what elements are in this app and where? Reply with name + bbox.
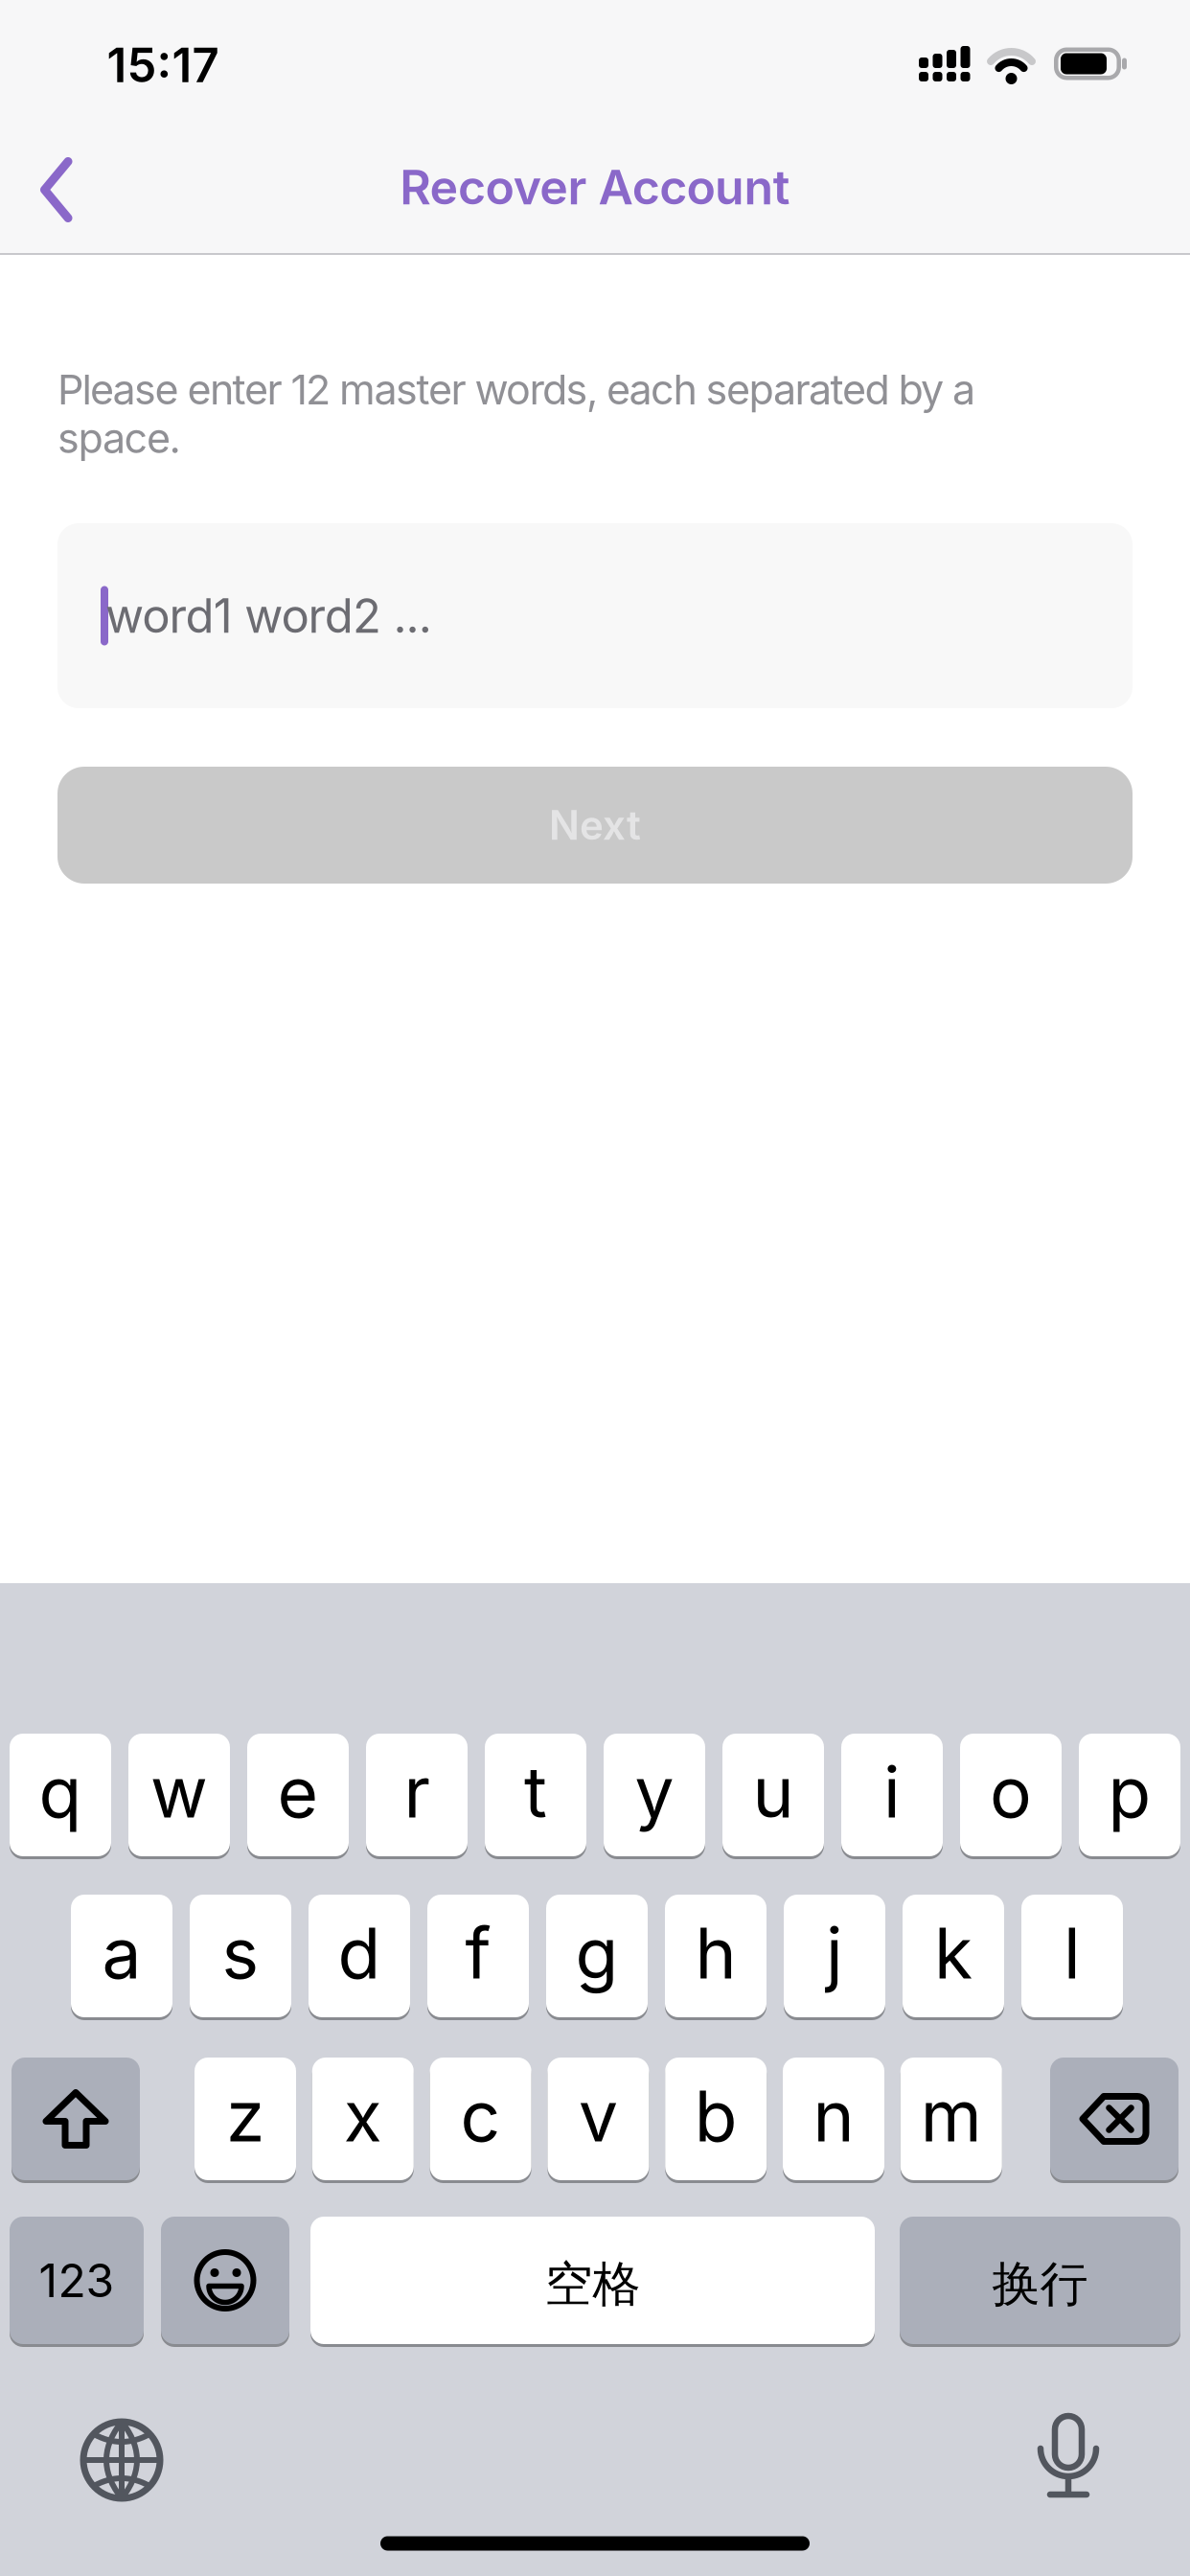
button[interactable]: s (190, 1893, 291, 2019)
button[interactable]: g (546, 1893, 648, 2019)
staticText: p (1108, 1751, 1151, 1833)
button[interactable]: Back (42, 157, 75, 222)
button[interactable]: o (960, 1732, 1062, 1858)
staticText: o (990, 1751, 1032, 1833)
button[interactable]: Delete (1050, 2056, 1179, 2182)
button[interactable]: b (665, 2056, 767, 2182)
staticText: j (826, 1912, 843, 1994)
button[interactable]: a (71, 1893, 172, 2019)
staticText: v (579, 2075, 618, 2157)
button[interactable]: Dictation (1020, 2414, 1116, 2500)
button[interactable]: p (1079, 1732, 1180, 1858)
button[interactable]: 换行 (900, 2215, 1180, 2346)
button[interactable]: q (10, 1732, 111, 1858)
button[interactable]: k (903, 1893, 1004, 2019)
button[interactable]: y (604, 1732, 705, 1858)
button[interactable]: i (841, 1732, 943, 1858)
button[interactable]: z (195, 2056, 296, 2182)
button[interactable]: Master words (57, 523, 1133, 708)
staticText: 空格 (545, 2255, 641, 2314)
staticText: w (150, 1751, 208, 1833)
button[interactable]: Next keyboard (79, 2417, 165, 2503)
button[interactable]: x (312, 2056, 414, 2182)
staticText: h (695, 1912, 736, 1994)
button[interactable]: Next (57, 767, 1133, 884)
staticText: f (465, 1912, 491, 1994)
button[interactable]: d (309, 1893, 410, 2019)
staticText: q (39, 1751, 82, 1833)
staticText: t (524, 1751, 547, 1833)
button[interactable]: e (247, 1732, 349, 1858)
button[interactable]: c (430, 2056, 531, 2182)
button[interactable]: r (366, 1732, 468, 1858)
button[interactable]: t (485, 1732, 586, 1858)
staticText: r (404, 1751, 430, 1833)
staticText: e (277, 1751, 319, 1833)
button[interactable]: w (128, 1732, 230, 1858)
button[interactable]: Shift (11, 2056, 140, 2182)
button[interactable]: h (665, 1893, 767, 2019)
staticText: z (226, 2075, 264, 2157)
staticText: n (813, 2075, 854, 2157)
button[interactable]: l (1021, 1893, 1123, 2019)
staticText: i (883, 1751, 901, 1833)
staticText: c (460, 2075, 501, 2157)
staticText: g (575, 1912, 618, 1994)
staticText: d (338, 1912, 381, 1994)
staticText: a (102, 1912, 141, 1994)
button[interactable]: Numbers (10, 2215, 144, 2346)
button[interactable]: 空格 (310, 2215, 875, 2346)
staticText: 换行 (992, 2255, 1088, 2314)
button[interactable]: n (783, 2056, 884, 2182)
staticText: word1 word2 ... (105, 588, 432, 643)
staticText: Please enter 12 master words, each separ… (57, 365, 975, 462)
button[interactable]: Emoji (161, 2215, 289, 2346)
staticText: u (753, 1751, 794, 1833)
staticText: b (694, 2075, 737, 2157)
staticText: l (1064, 1912, 1081, 1994)
staticText: s (222, 1912, 259, 1994)
staticText: Recover Account (400, 159, 790, 215)
button[interactable]: j (784, 1893, 885, 2019)
button[interactable]: u (722, 1732, 824, 1858)
staticText: 15:17 (107, 37, 219, 93)
staticText: k (934, 1912, 973, 1994)
button[interactable]: v (547, 2056, 649, 2182)
button[interactable]: m (900, 2056, 1002, 2182)
staticText: y (635, 1751, 674, 1833)
staticText: m (921, 2075, 982, 2157)
staticText: 123 (39, 2253, 114, 2307)
staticText: x (344, 2075, 382, 2157)
button[interactable]: f (427, 1893, 529, 2019)
staticText: Next (549, 801, 641, 849)
